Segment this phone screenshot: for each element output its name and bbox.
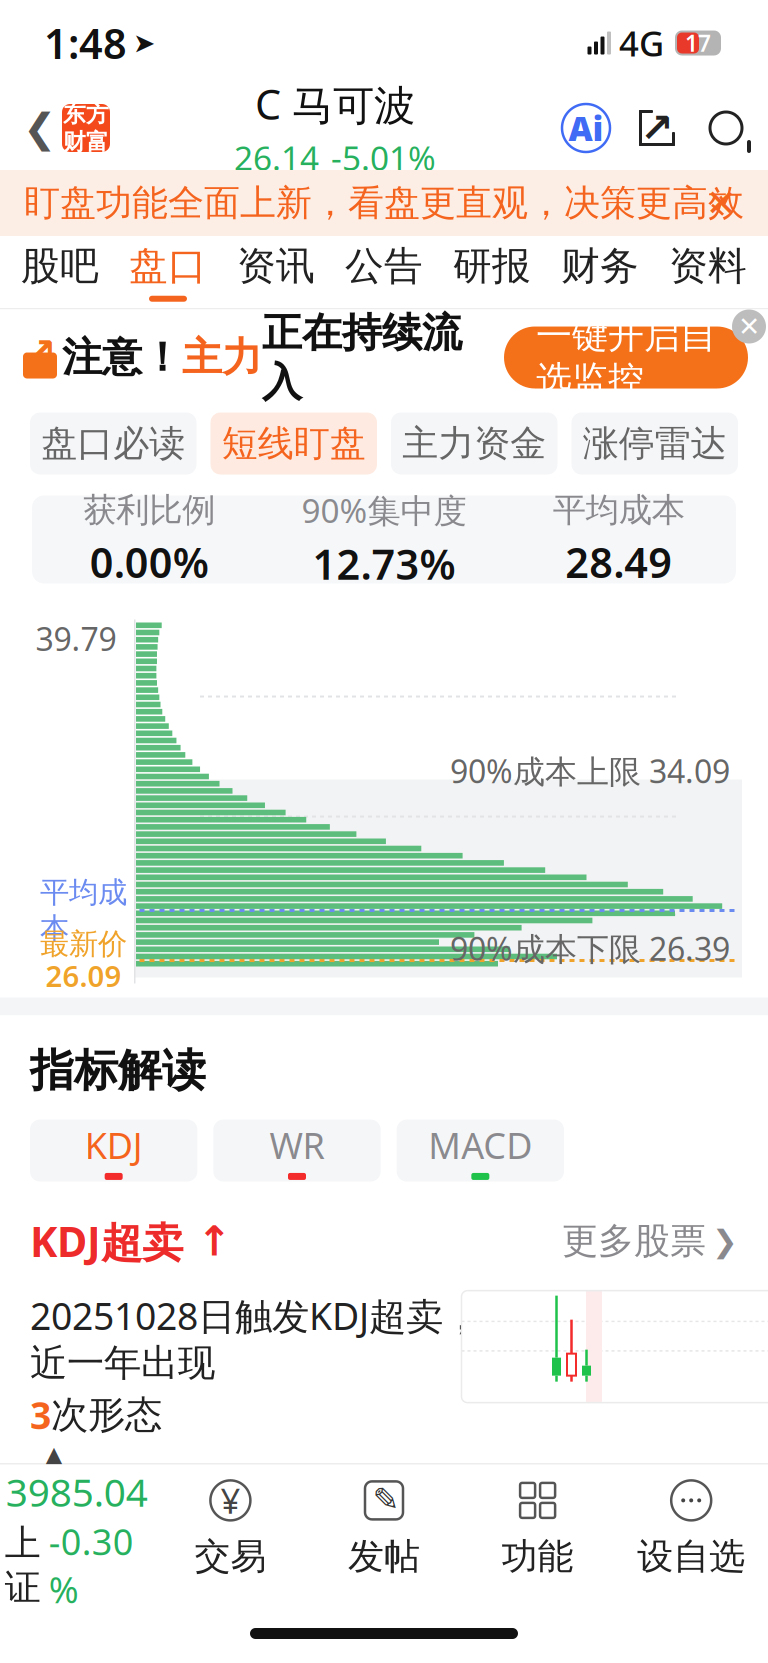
staticText: 涨停雷达 xyxy=(583,421,727,466)
staticText: 财富 xyxy=(63,128,109,156)
button[interactable]: 涨停雷达 xyxy=(571,412,738,474)
staticText: ✎ xyxy=(372,1481,399,1517)
button[interactable]: 资讯 xyxy=(222,236,330,308)
staticText: 20251028日触发KDJ超卖，近一年出现 xyxy=(30,1291,480,1386)
button[interactable]: 一键开启自选监控 xyxy=(504,326,748,388)
staticText: 更多股票 xyxy=(562,1219,706,1263)
staticText: 资料 xyxy=(669,242,747,290)
staticText: 盘口 xyxy=(129,242,207,290)
staticText: 3 xyxy=(30,1390,51,1440)
staticText: 28.49 xyxy=(565,534,672,589)
staticText: 交易 xyxy=(194,1534,266,1579)
button[interactable]: AI 助手 xyxy=(560,102,612,154)
staticText: 90%成本上限 34.09 xyxy=(450,749,730,792)
staticText: 0.00% xyxy=(90,534,209,589)
staticText: KDJ超卖 xyxy=(30,1213,183,1269)
button[interactable]: 研报 xyxy=(438,236,546,308)
staticText: C 马可波 xyxy=(255,76,415,131)
staticText: 上证 xyxy=(5,1521,41,1609)
button[interactable]: 返回 xyxy=(18,97,62,159)
button[interactable]: 关闭提示 xyxy=(694,176,748,230)
button[interactable]: 资料 xyxy=(654,236,762,308)
button[interactable]: 盘口必读 xyxy=(30,412,196,474)
staticText: 26.09 xyxy=(45,956,121,995)
staticText: ❯ xyxy=(712,1224,738,1258)
staticText: ✕ xyxy=(738,311,760,342)
button[interactable]: 东方财富 xyxy=(62,104,110,152)
button[interactable]: 搜索 xyxy=(702,104,750,152)
button[interactable]: KDJ xyxy=(30,1119,197,1181)
staticText: ▲ xyxy=(46,1442,62,1466)
button[interactable]: 设自选 xyxy=(614,1476,768,1579)
staticText: 东方 xyxy=(63,100,109,128)
staticText: ↗ xyxy=(23,330,57,375)
staticText: 39.79 xyxy=(35,617,116,660)
staticText: ✕ xyxy=(705,182,736,224)
staticText: 研报 xyxy=(453,242,531,290)
staticText: 平均成本 xyxy=(553,490,685,530)
button[interactable]: 更多股票 xyxy=(562,1216,738,1266)
staticText: 发帖 xyxy=(348,1534,420,1579)
button[interactable]: 主力资金 xyxy=(391,412,557,474)
button[interactable]: MACD xyxy=(397,1119,564,1181)
button[interactable]: 财务 xyxy=(546,236,654,308)
staticText: ➤ xyxy=(133,28,155,58)
button[interactable]: WR xyxy=(213,1119,381,1181)
staticText: MACD xyxy=(428,1121,532,1169)
button[interactable]: 股吧 xyxy=(6,236,114,308)
staticText: 17 xyxy=(685,28,711,58)
staticText: 次形态 xyxy=(51,1392,162,1438)
staticText: Ai xyxy=(568,106,603,150)
staticText: 盘口必读 xyxy=(41,421,185,466)
staticText: -5.01% xyxy=(331,135,436,180)
staticText: 公告 xyxy=(345,242,423,290)
button[interactable]: ✎ xyxy=(307,1476,461,1579)
staticText: 资讯 xyxy=(237,242,315,290)
staticText: 26.14 xyxy=(234,135,319,180)
staticText: ↑ xyxy=(183,1218,232,1264)
button[interactable]: ¥ xyxy=(154,1476,307,1579)
button[interactable]: 公告 xyxy=(330,236,438,308)
staticText: 1:48 xyxy=(44,16,127,70)
staticText: 功能 xyxy=(502,1534,574,1579)
staticText: 平均成本 xyxy=(40,874,127,947)
staticText: 注意！ xyxy=(62,333,182,382)
staticText: 短线盯盘 xyxy=(222,421,366,466)
staticText: 90%集中度 xyxy=(301,488,466,532)
staticText: 主力资金 xyxy=(402,421,546,466)
staticText: ↗ xyxy=(640,105,674,151)
staticText: 财务 xyxy=(561,242,639,290)
staticText: 主力 xyxy=(182,333,262,382)
staticText: 4G xyxy=(619,20,664,66)
staticText: 设自选 xyxy=(637,1534,745,1579)
button[interactable]: 上证指数 3985.04 跌 0.30% xyxy=(0,1442,154,1613)
staticText: KDJ xyxy=(85,1121,143,1169)
staticText: 盯盘功能全面上新，看盘更直观，决策更高效 xyxy=(24,181,744,225)
button[interactable]: 分享 xyxy=(634,105,680,151)
button[interactable]: 关闭广告 xyxy=(732,309,766,343)
button[interactable]: 盘口 xyxy=(114,236,222,308)
staticText: 股吧 xyxy=(21,242,99,290)
staticText: 最新价 xyxy=(40,926,127,962)
button[interactable]: 功能 xyxy=(461,1476,614,1579)
staticText: ¥ xyxy=(220,1477,240,1523)
staticText: 正在持续流入 xyxy=(262,308,462,407)
button[interactable]: 短线盯盘 xyxy=(210,412,377,474)
staticText: 获利比例 xyxy=(83,490,215,530)
staticText: WR xyxy=(269,1121,324,1169)
staticText: ❮ xyxy=(23,105,57,151)
staticText: -0.30% xyxy=(49,1517,134,1613)
staticText: 指标解读 xyxy=(30,1043,206,1097)
staticText: 90%成本下限 26.39 xyxy=(450,927,730,969)
staticText: 12.73% xyxy=(312,536,455,591)
staticText: 3985.04 xyxy=(6,1466,148,1517)
staticText: 一键开启自选监控 xyxy=(536,313,716,402)
